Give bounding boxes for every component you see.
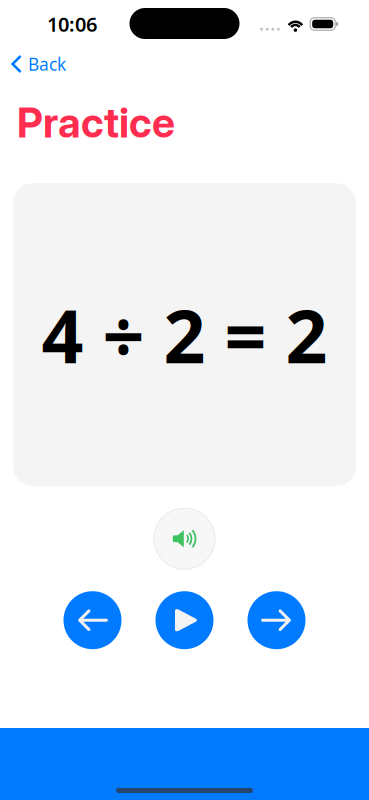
staticText: 10:06 bbox=[47, 11, 97, 37]
staticText: 4 ÷ 2 = 2 bbox=[41, 286, 327, 383]
staticText: Back bbox=[28, 52, 66, 75]
button[interactable]: Speak bbox=[154, 508, 215, 569]
button[interactable]: Back bbox=[0, 47, 76, 80]
button[interactable]: Play bbox=[155, 591, 213, 649]
staticText: Practice bbox=[17, 98, 175, 147]
button[interactable]: Next bbox=[247, 591, 305, 649]
button[interactable]: Previous bbox=[63, 591, 121, 649]
